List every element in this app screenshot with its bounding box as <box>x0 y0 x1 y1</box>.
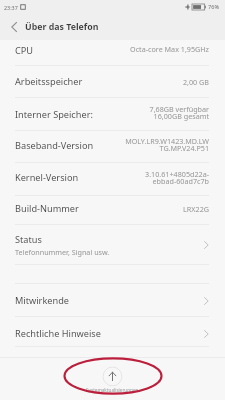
staticText: LRX22G <box>183 204 209 214</box>
staticText: 3.10.61+4805d22a- ebbad-60ad7c7b <box>145 169 209 186</box>
staticText: Octa-core Max 1,95GHz <box>130 44 209 54</box>
staticText: Mitwirkende <box>15 294 70 307</box>
staticText: Baseband-Version <box>15 139 94 152</box>
button[interactable]: Mitwirkende <box>0 284 225 316</box>
staticText: Systemaktualisierungen <box>86 387 139 393</box>
staticText: CPU <box>15 44 34 57</box>
staticText: Rechtliche Hinweise <box>15 327 101 340</box>
button[interactable]: Back <box>6 19 22 35</box>
button[interactable]: Arbeitsspeicher <box>0 66 225 97</box>
button[interactable]: Rechtliche Hinweise <box>0 317 225 346</box>
button[interactable]: Kernel-Version <box>0 163 225 195</box>
staticText: 2,00 GB <box>182 77 209 87</box>
staticText: 23:37 <box>4 4 18 11</box>
staticText: 76% <box>208 3 220 11</box>
button[interactable]: Status <box>0 225 225 264</box>
button[interactable]: Interner Speicher: <box>0 98 225 130</box>
button[interactable]: Baseband-Version <box>0 131 225 163</box>
staticText: Interner Speicher: <box>15 108 93 121</box>
staticText: Arbeitsspeicher <box>15 75 83 88</box>
staticText: Kernel-Version <box>15 171 79 184</box>
staticText: 7,68GB verfügbar 16,00GB gesamt <box>149 104 209 121</box>
staticText: MOLY.LR9.W1423.MD.LW TG.MP.V24.P51 <box>125 136 209 153</box>
staticText: Build-Nummer <box>15 202 79 215</box>
staticText: Status <box>15 233 42 246</box>
button[interactable]: CPU <box>0 39 225 65</box>
button[interactable]: Systemaktualisierungen <box>0 366 225 393</box>
button[interactable]: Build-Nummer <box>0 196 225 224</box>
staticText: Telefonnummer, Signal usw. <box>15 247 110 257</box>
staticText: Über das Telefon <box>25 21 99 33</box>
